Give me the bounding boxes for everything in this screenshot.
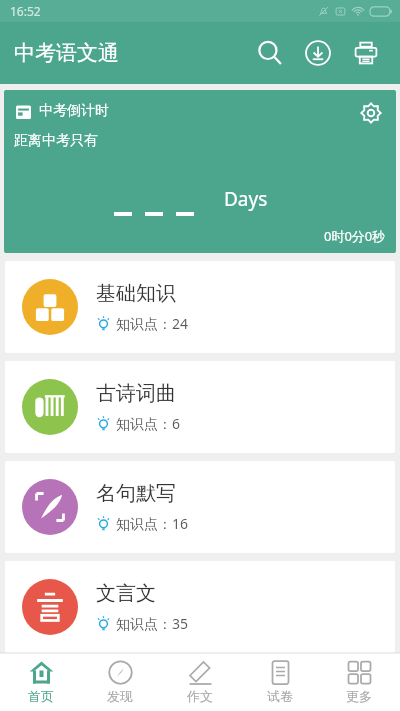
button[interactable]: 作文 [161, 653, 239, 711]
staticText: 作文 [187, 688, 213, 704]
staticText: 知识点：16 [116, 514, 189, 533]
staticText: 首页 [28, 688, 54, 704]
staticText: 知识点：35 [116, 614, 189, 633]
button[interactable]: 古诗词曲 [5, 361, 395, 453]
button[interactable]: 中考倒计时 [4, 90, 396, 253]
button[interactable]: Download [294, 29, 342, 77]
staticText: Days [224, 186, 268, 212]
staticText: 基础知识 [96, 281, 176, 306]
staticText: 知识点：6 [116, 414, 181, 433]
button[interactable]: 首页 [2, 653, 80, 711]
staticText: 更多 [346, 688, 372, 704]
button[interactable]: 基础知识 [5, 261, 395, 353]
staticText: 中考语文通 [14, 40, 119, 66]
button[interactable]: 名句默写 [5, 461, 395, 553]
button[interactable]: Search [246, 29, 294, 77]
staticText: 文言文 [96, 581, 156, 606]
staticText: 知识点：24 [116, 314, 189, 333]
staticText: 16:52 [10, 3, 41, 19]
staticText: 发现 [107, 688, 133, 704]
staticText: 中考倒计时 [39, 102, 109, 120]
button[interactable]: 试卷 [241, 653, 319, 711]
button[interactable]: 文言文 [5, 561, 395, 653]
button[interactable]: Settings [356, 98, 386, 128]
staticText: 0时0分0秒 [324, 227, 386, 245]
staticText: 古诗词曲 [96, 381, 176, 406]
button[interactable]: Print [342, 29, 390, 77]
button[interactable]: 更多 [320, 653, 398, 711]
staticText: 试卷 [267, 688, 293, 704]
staticText: 距离中考只有 [14, 132, 98, 150]
button[interactable]: 发现 [81, 653, 159, 711]
staticText: 名句默写 [96, 481, 176, 506]
